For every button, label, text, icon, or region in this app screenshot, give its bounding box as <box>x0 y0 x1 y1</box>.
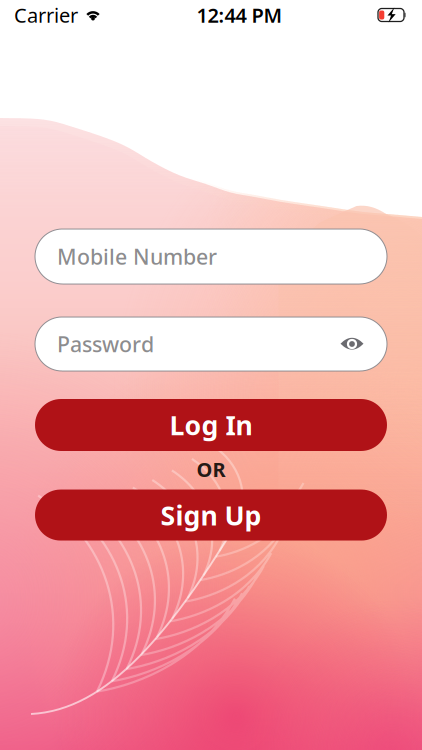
button[interactable]: Sign Up <box>35 490 387 541</box>
button[interactable]: Show password <box>339 334 365 354</box>
staticText: Carrier <box>14 2 78 28</box>
staticText: OR <box>196 456 225 483</box>
staticText: Mobile Number <box>57 242 217 271</box>
staticText: Log In <box>169 407 252 443</box>
staticText: 12:44 PM <box>196 2 282 28</box>
staticText: Password <box>57 330 154 358</box>
button[interactable]: Log In <box>35 399 387 451</box>
staticText: Sign Up <box>160 497 261 533</box>
